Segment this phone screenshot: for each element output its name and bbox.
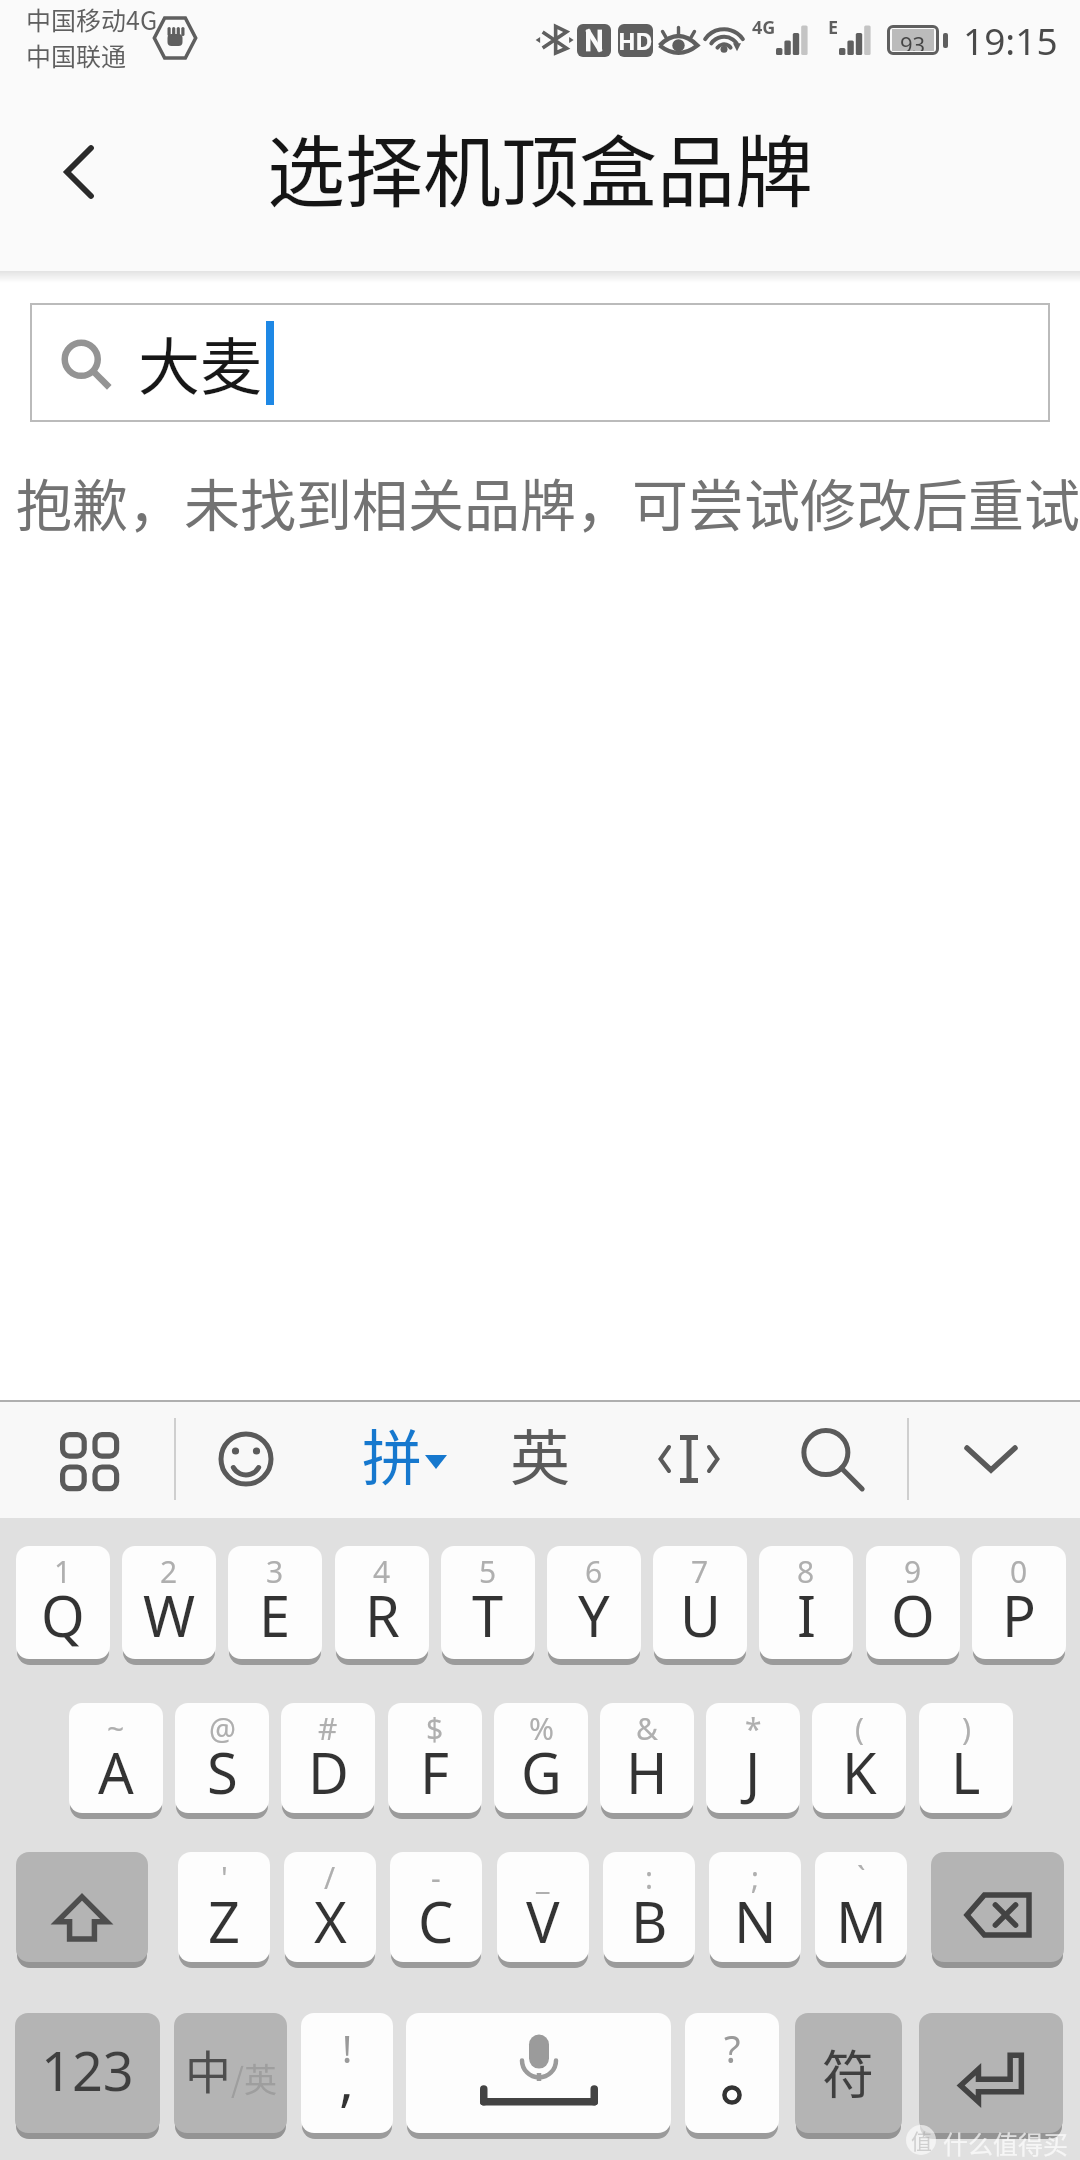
button[interactable]: 英 [490,1409,590,1509]
staticText: , [339,2041,355,2117]
staticText: - [431,1857,441,1898]
staticText: T [472,1577,504,1653]
staticText: S [207,1734,238,1810]
button[interactable]: ; [709,1852,801,1962]
staticText: * [745,1708,762,1749]
staticText: C [418,1883,454,1959]
staticText: : [645,1857,654,1898]
staticText: N [734,1883,777,1959]
staticText: ~ [107,1708,125,1749]
staticText: 4 [373,1551,391,1592]
staticText: 5 [479,1551,497,1592]
staticText: E [259,1577,291,1653]
button[interactable]: 键盘布局 [37,1409,137,1509]
staticText: 拼 [362,1410,422,1497]
button[interactable]: 中 [174,2013,287,2133]
staticText: R [365,1577,400,1653]
staticText: H [626,1734,668,1810]
staticText: $ [426,1708,444,1749]
button[interactable]: ' [178,1852,270,1962]
button[interactable]: 8 [759,1546,853,1659]
button[interactable]: 拼 [348,1409,461,1509]
staticText: / [324,1857,336,1898]
staticText: 0 [1010,1551,1028,1592]
button[interactable]: % [494,1703,588,1813]
staticText: 8 [797,1551,815,1592]
staticText: % [529,1708,554,1749]
staticText: @ [209,1708,236,1749]
staticText: 6 [585,1551,603,1592]
staticText: 3 [266,1551,284,1592]
button[interactable]: @ [175,1703,269,1813]
staticText: ! [342,2022,353,2074]
button[interactable]: 9 [866,1546,960,1659]
staticText: ` [857,1857,866,1898]
staticText: Z [208,1883,241,1959]
staticText: HD [618,25,653,56]
staticText: 7 [691,1551,709,1592]
staticText: K [842,1734,877,1810]
staticText: 值 [911,2125,932,2155]
staticText: W [143,1577,196,1653]
button[interactable]: * [706,1703,800,1813]
button[interactable]: - [390,1852,482,1962]
staticText: ( [855,1708,864,1749]
button[interactable]: / [284,1852,376,1962]
button[interactable]: Shift [16,1852,148,1962]
button[interactable]: 7 [653,1546,747,1659]
staticText: & [636,1708,658,1749]
button[interactable]: 1 [16,1546,110,1659]
staticText: 选择机顶盒品牌 [267,111,814,224]
button[interactable]: Backspace [931,1852,1064,1962]
button[interactable]: ? [685,2013,779,2133]
staticText: Q [41,1577,85,1653]
button[interactable]: # [281,1703,375,1813]
button[interactable]: ) [919,1703,1013,1813]
staticText: 123 [41,2033,134,2107]
staticText: P [1002,1577,1036,1653]
button[interactable]: : [603,1852,695,1962]
button[interactable]: 回车 [919,2013,1063,2133]
button[interactable]: _ [497,1852,589,1962]
button[interactable]: ~ [69,1703,163,1813]
button[interactable]: 空格 [406,2013,671,2133]
staticText: B [631,1883,668,1959]
button[interactable]: ` [815,1852,907,1962]
button[interactable]: 123 [15,2013,160,2133]
staticText: ' [221,1857,228,1898]
button[interactable]: & [600,1703,694,1813]
button[interactable]: ! [301,2013,393,2133]
button[interactable]: 表情 [196,1409,296,1509]
staticText: Y [578,1577,610,1653]
staticText: 符 [822,2034,875,2109]
staticText: U [680,1577,721,1653]
staticText: /英 [231,2054,277,2102]
staticText: X [314,1883,347,1959]
staticText: G [521,1734,562,1810]
button[interactable]: 4 [335,1546,429,1659]
staticText: 1 [54,1551,72,1592]
button[interactable]: 3 [228,1546,322,1659]
staticText: 9 [904,1551,922,1592]
staticText: J [745,1734,761,1810]
button[interactable]: 返回 [24,117,134,227]
button[interactable]: 移动光标 [639,1409,739,1509]
staticText: M [836,1883,887,1959]
button[interactable]: 搜索 [781,1409,881,1509]
staticText: 2 [160,1551,178,1592]
button[interactable]: 2 [122,1546,216,1659]
button[interactable]: 符 [795,2013,902,2133]
staticText: O [891,1577,935,1653]
button[interactable]: 5 [441,1546,535,1659]
staticText: D [308,1734,349,1810]
button[interactable]: 收起键盘 [941,1409,1041,1509]
button[interactable]: 6 [547,1546,641,1659]
button[interactable]: 大麦 [30,303,1050,422]
staticText: _ [536,1857,550,1898]
button[interactable]: $ [388,1703,482,1813]
button[interactable]: 0 [972,1546,1066,1659]
staticText: 中国联通 [26,37,127,73]
button[interactable]: ( [812,1703,906,1813]
staticText: A [98,1734,134,1810]
staticText: 4G [752,15,776,40]
